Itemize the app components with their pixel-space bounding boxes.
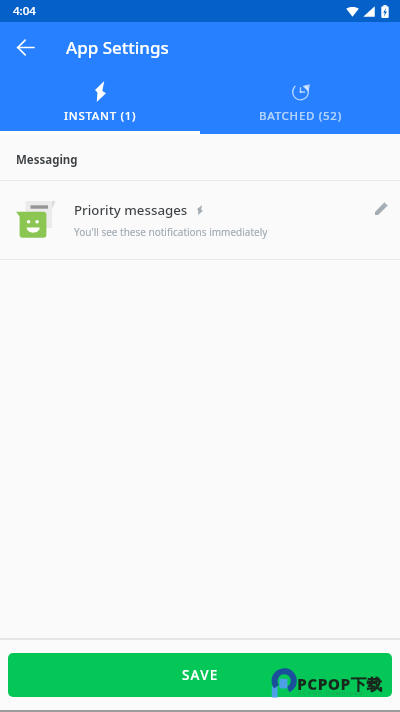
button[interactable]: INSTANT (1) bbox=[0, 72, 200, 134]
button[interactable]: Edit bbox=[364, 191, 398, 225]
button[interactable]: SAVE bbox=[8, 653, 392, 697]
staticText: SAVE bbox=[182, 666, 219, 684]
staticText: PCPOP下载 bbox=[297, 673, 383, 694]
staticText: Messaging bbox=[16, 152, 78, 168]
staticText: App Settings bbox=[66, 36, 169, 59]
button[interactable]: Back bbox=[7, 29, 43, 65]
staticText: BATCHED (52) bbox=[259, 108, 342, 124]
staticText: Priority messages bbox=[74, 201, 188, 219]
staticText: INSTANT (1) bbox=[64, 108, 137, 124]
button[interactable]: Priority messages bbox=[0, 181, 400, 259]
staticText: You'll see these notifications immediate… bbox=[74, 225, 268, 239]
staticText: 4:04 bbox=[13, 3, 36, 19]
staticText: PCPOP Download bbox=[298, 689, 364, 696]
button[interactable]: BATCHED (52) bbox=[200, 72, 400, 134]
